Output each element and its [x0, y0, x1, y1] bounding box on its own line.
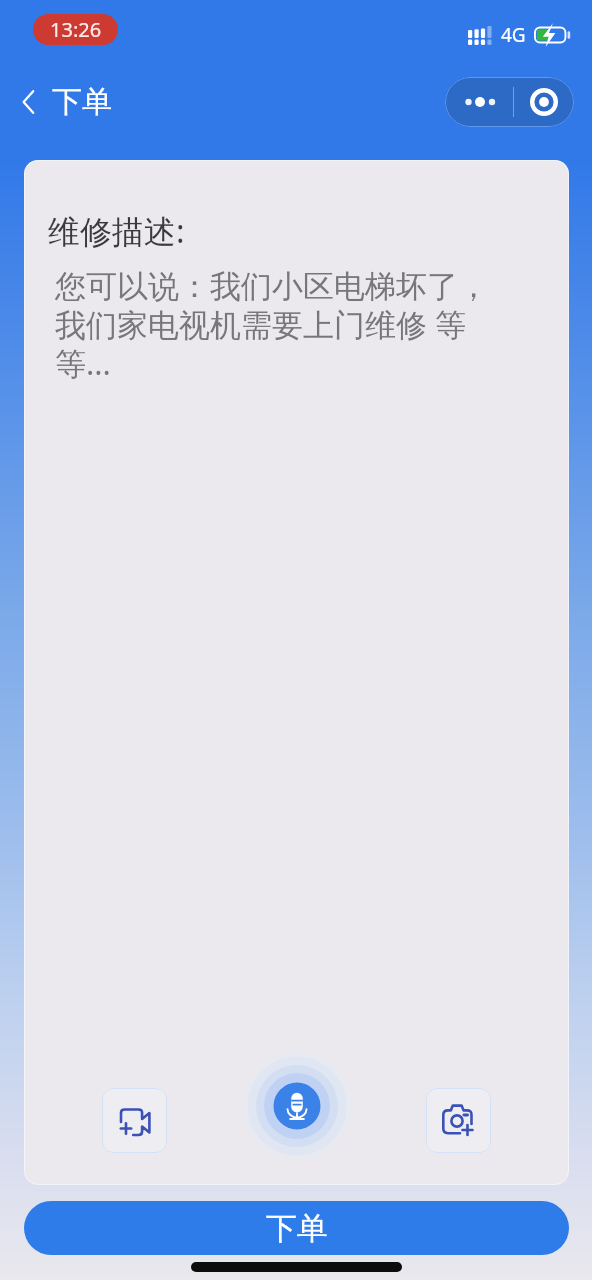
staticText: 下单: [266, 1209, 328, 1248]
staticText: 下单: [52, 83, 112, 121]
button[interactable]: 下单: [24, 1201, 569, 1255]
button[interactable]: Add video: [102, 1088, 167, 1153]
staticText: 您可以说：我们小区电梯坏了， 我们家电视机需要上门维修 等 等...: [55, 267, 489, 384]
other: Back: [14, 87, 44, 117]
staticText: 4G: [501, 22, 526, 48]
staticText: 13:26: [50, 16, 102, 43]
button[interactable]: Back: [14, 83, 112, 121]
button[interactable]: Add photo: [426, 1088, 491, 1153]
button[interactable]: More: [445, 77, 513, 127]
button[interactable]: Voice input: [247, 1056, 347, 1156]
staticText: 维修描述:: [48, 209, 185, 253]
button[interactable]: Close: [514, 77, 574, 127]
